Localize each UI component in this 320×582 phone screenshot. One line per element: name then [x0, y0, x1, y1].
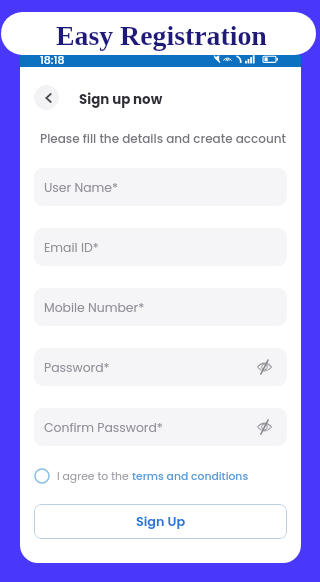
staticText: Mobile Number*: [44, 299, 145, 316]
other: Show password: [257, 360, 272, 374]
other: Show password: [257, 420, 272, 434]
button[interactable]: Email ID*: [34, 228, 287, 266]
staticText: Email ID*: [44, 239, 99, 256]
button[interactable]: Mobile Number*: [34, 288, 287, 326]
staticText: User Name*: [44, 179, 118, 196]
button[interactable]: I agree to the: [34, 468, 301, 484]
staticText: Please fill the details and create accou…: [40, 130, 286, 147]
button[interactable]: Sign Up: [34, 504, 287, 539]
button[interactable]: Password*: [34, 348, 287, 386]
staticText: terms and conditions: [132, 469, 249, 484]
button[interactable]: Back: [34, 85, 59, 110]
staticText: Confirm Password*: [44, 419, 163, 436]
staticText: I agree to the: [57, 469, 132, 484]
staticText: Sign up now: [79, 90, 163, 109]
staticText: 18:18: [40, 55, 65, 64]
staticText: Sign Up: [136, 513, 186, 531]
other: Status icons: [211, 55, 285, 65]
staticText: Password*: [44, 359, 110, 376]
button[interactable]: User Name*: [34, 168, 287, 206]
staticText: Easy Registration: [56, 20, 267, 51]
button[interactable]: Confirm Password*: [34, 408, 287, 446]
